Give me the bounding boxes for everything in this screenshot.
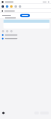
button[interactable]: Menu bbox=[2, 112, 5, 114]
button[interactable] bbox=[0, 37, 51, 40]
button[interactable] bbox=[0, 33, 51, 37]
button[interactable]: Continue bbox=[20, 14, 30, 17]
